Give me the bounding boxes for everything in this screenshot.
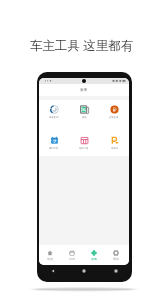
- staticText: 停车场: [111, 147, 118, 150]
- staticText: 发现: [91, 257, 97, 261]
- staticText: 发现: [80, 88, 88, 93]
- staticText: 车主工具 这里都有: [30, 37, 134, 54]
- button[interactable]: 限行日历: [39, 136, 69, 162]
- staticText: 限行日历: [49, 147, 59, 150]
- button[interactable]: 我的: [105, 245, 127, 265]
- button[interactable]: Home: [68, 264, 100, 278]
- staticText: 日历: [69, 257, 75, 261]
- staticText: 首页: [47, 257, 53, 261]
- button[interactable]: 交警在线: [99, 105, 129, 131]
- staticText: 交警在线: [109, 116, 119, 119]
- staticText: 我的: [113, 257, 119, 261]
- staticText: 资讯: [82, 116, 87, 119]
- button[interactable]: 首页: [39, 245, 61, 265]
- button[interactable]: Back: [37, 264, 68, 278]
- button[interactable]: 停车场: [99, 136, 129, 162]
- button[interactable]: 油耗计算: [69, 136, 99, 162]
- button[interactable]: 日历: [61, 245, 83, 265]
- button[interactable]: Recents: [100, 264, 132, 278]
- button[interactable]: 资讯: [69, 105, 99, 131]
- button[interactable]: 违章查询: [39, 105, 69, 131]
- staticText: 油耗计算: [79, 147, 89, 150]
- staticText: 违章查询: [49, 116, 59, 119]
- button[interactable]: 发现: [83, 245, 105, 265]
